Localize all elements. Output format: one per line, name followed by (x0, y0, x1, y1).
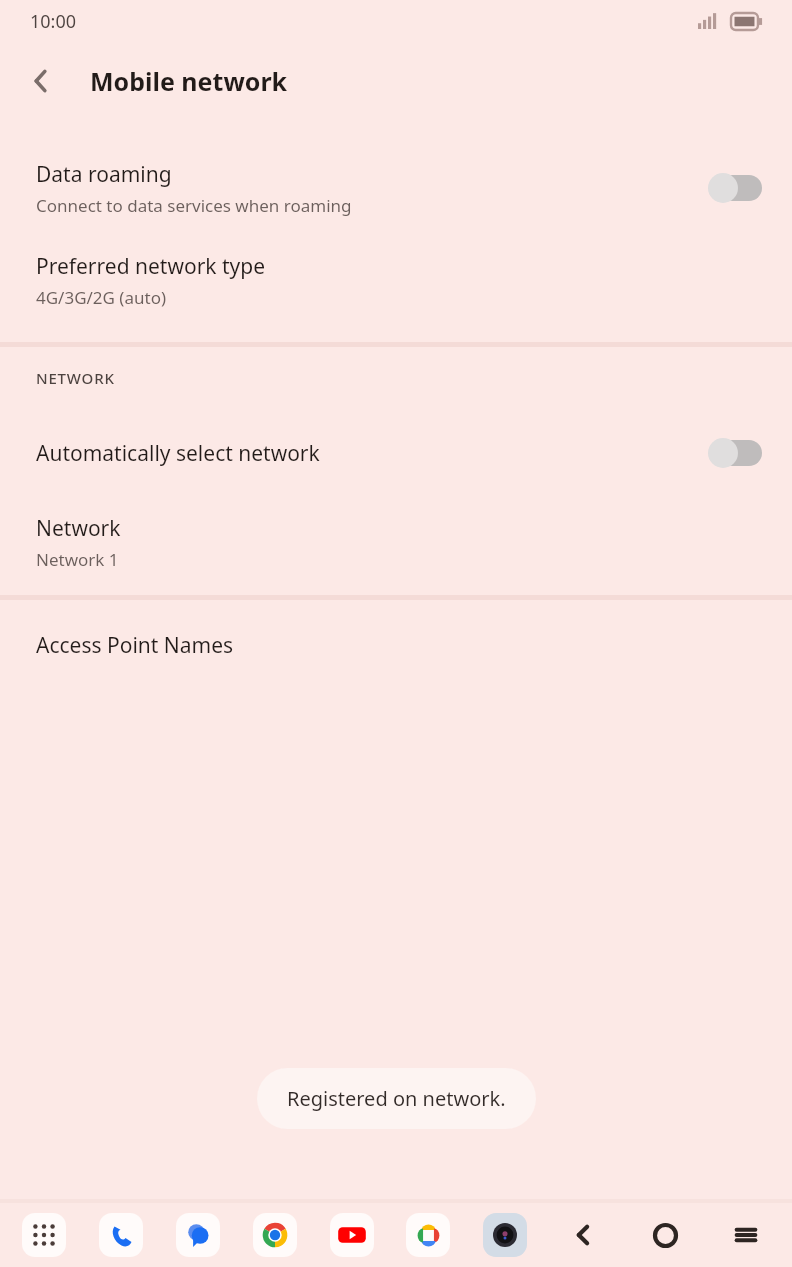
button[interactable]: Phone (99, 1213, 143, 1257)
staticText: Registered on network. (287, 1085, 506, 1112)
button[interactable]: Access Point Names (0, 600, 792, 690)
staticText: Network 1 (36, 548, 119, 571)
staticText: Data roaming (36, 160, 172, 189)
button[interactable]: Back (560, 1211, 608, 1259)
staticText: 4G/3G/2G (auto) (36, 286, 167, 309)
button[interactable]: Automatically select network (0, 409, 792, 497)
button[interactable]: Chrome (253, 1213, 297, 1257)
other: Photos (415, 1222, 442, 1249)
other: App drawer (31, 1222, 57, 1248)
staticText: Access Point Names (36, 631, 234, 660)
button[interactable]: Messages (176, 1213, 220, 1257)
other: Messages (185, 1222, 212, 1249)
other: Phone (109, 1223, 134, 1248)
other: Chrome (261, 1221, 289, 1249)
other: YouTube (337, 1220, 367, 1250)
button[interactable]: Preferred network type (0, 234, 792, 326)
button[interactable]: Camera (483, 1213, 527, 1257)
button[interactable]: Navigate up (16, 56, 66, 106)
button[interactable]: Recents (722, 1211, 770, 1259)
button[interactable]: Home (641, 1211, 689, 1259)
staticText: 10:00 (30, 9, 77, 34)
staticText: Connect to data services when roaming (36, 194, 352, 217)
staticText: Mobile network (90, 64, 288, 98)
button[interactable]: YouTube (330, 1213, 374, 1257)
staticText: Network (36, 514, 121, 543)
button[interactable]: Network (0, 497, 792, 587)
button[interactable]: Data roaming (0, 142, 792, 234)
other: Camera (490, 1220, 520, 1250)
button[interactable]: App drawer (22, 1213, 66, 1257)
staticText: Preferred network type (36, 252, 266, 281)
staticText: NETWORK (36, 368, 115, 388)
staticText: Automatically select network (36, 439, 320, 468)
button[interactable]: Photos (406, 1213, 450, 1257)
